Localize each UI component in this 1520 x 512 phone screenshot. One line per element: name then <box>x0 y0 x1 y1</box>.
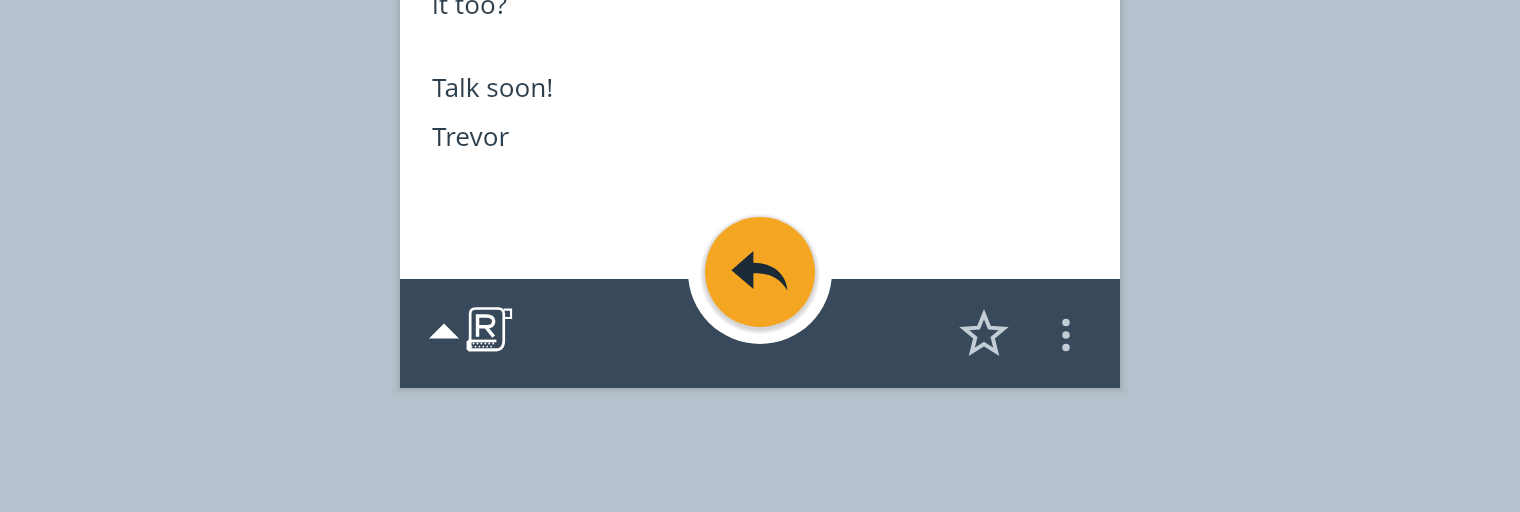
staticText: Trevor <box>432 118 510 153</box>
staticText: it too? <box>432 0 507 21</box>
button[interactable]: Reply <box>705 217 815 327</box>
button[interactable]: Label <box>464 304 520 360</box>
button[interactable]: More options <box>1040 309 1092 361</box>
button[interactable]: Collapse <box>420 307 468 355</box>
staticText: Talk soon! <box>432 69 554 104</box>
button[interactable]: Star <box>958 309 1010 361</box>
